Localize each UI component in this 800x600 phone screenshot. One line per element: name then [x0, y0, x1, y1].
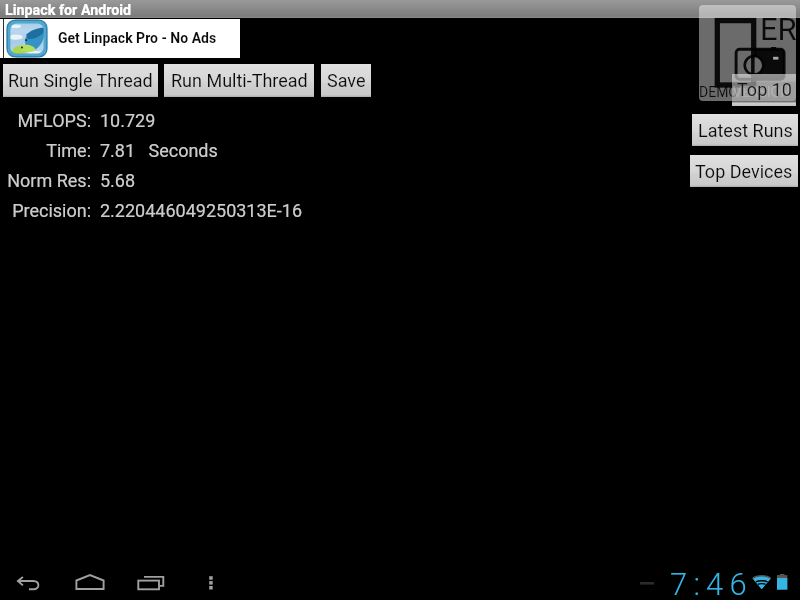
staticText: 7.81 Seconds: [100, 140, 218, 161]
staticText: ER: [760, 11, 796, 47]
button[interactable]: Run Multi-Thread: [164, 64, 314, 97]
staticText: Precision:: [0, 200, 91, 221]
staticText: Get Linpack Pro - No Ads: [58, 30, 217, 46]
button[interactable]: Get Linpack Pro - No Ads: [0, 19, 240, 58]
button[interactable]: Recent apps: [130, 566, 174, 598]
staticText: Run Multi-Thread: [171, 70, 308, 91]
button[interactable]: Top 10: [732, 74, 796, 106]
button[interactable]: Save: [321, 64, 371, 97]
staticText: DEMO: [699, 84, 738, 100]
staticText: Top 10: [737, 79, 792, 100]
staticText: MFLOPS:: [0, 110, 91, 131]
staticText: 7:46: [670, 566, 753, 600]
staticText: Norm Res:: [0, 170, 91, 191]
button[interactable]: Back: [8, 566, 52, 598]
other: Wi-Fi: [752, 574, 772, 590]
button[interactable]: Top Devices: [690, 155, 798, 187]
staticText: Save: [327, 70, 366, 91]
button[interactable]: Home: [68, 566, 112, 598]
button[interactable]: Run Single Thread: [3, 64, 158, 97]
staticText: Latest Runs: [698, 120, 793, 141]
staticText: Run Single Thread: [8, 70, 153, 91]
staticText: Linpack for Android: [5, 2, 132, 19]
other: Battery: [777, 574, 789, 592]
button[interactable]: Latest Runs: [692, 114, 798, 146]
staticText: VERSION: [733, 84, 791, 100]
button[interactable]: Menu: [198, 566, 226, 598]
staticText: 5.68: [100, 170, 136, 191]
staticText: 2.220446049250313E-16: [100, 200, 303, 221]
staticText: 10.729: [100, 110, 156, 131]
staticText: Top Devices: [695, 161, 793, 182]
staticText: Time:: [0, 140, 91, 161]
